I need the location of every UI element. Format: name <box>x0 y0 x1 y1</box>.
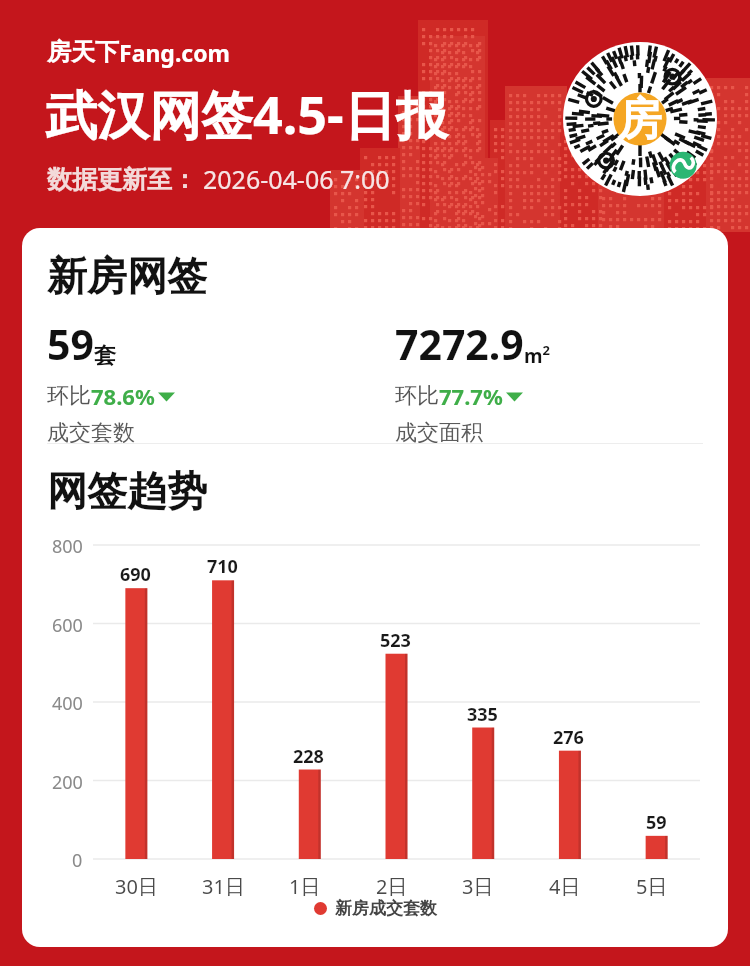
staticText: 环比 <box>47 382 91 410</box>
staticText: 0 <box>72 848 83 873</box>
staticText: 59 <box>47 316 94 372</box>
staticText: 228 <box>293 744 324 769</box>
staticText: 800 <box>52 534 83 559</box>
staticText: 5日 <box>636 873 668 900</box>
staticText: 4日 <box>549 873 581 900</box>
staticText: 78.6% <box>91 381 155 411</box>
staticText: 7272.9 <box>395 316 524 372</box>
staticText: 环比 <box>395 382 439 410</box>
staticText: 套 <box>94 342 116 370</box>
staticText: 276 <box>553 725 584 750</box>
staticText: Fang.com <box>119 37 231 68</box>
staticText: 30日 <box>115 873 158 900</box>
staticText: 31日 <box>202 873 245 900</box>
staticText: 77.7% <box>439 381 503 411</box>
staticText: 600 <box>52 613 83 638</box>
staticText: 2026-04-06 7:00 <box>203 162 390 196</box>
staticText: 1日 <box>289 873 321 900</box>
staticText: m2 <box>524 341 550 368</box>
staticText: 59 <box>646 810 667 835</box>
staticText: 房 <box>618 92 662 147</box>
staticText: 523 <box>380 628 411 653</box>
staticText: 710 <box>207 554 238 579</box>
staticText: 成交套数 <box>47 419 135 447</box>
button[interactable]: 小程序二维码 <box>563 42 717 196</box>
staticText: 房天下 <box>47 37 119 67</box>
staticText: 新房网签 <box>47 251 207 301</box>
staticText: 数据更新至： <box>47 164 197 195</box>
staticText: 200 <box>52 770 83 795</box>
staticText: 400 <box>52 691 83 716</box>
staticText: 成交面积 <box>395 419 483 447</box>
staticText: 武汉网签4.5-日报 <box>45 78 448 149</box>
staticText: 335 <box>467 702 498 727</box>
staticText: 690 <box>120 562 151 587</box>
staticText: 2日 <box>376 873 408 900</box>
staticText: 新房成交套数 <box>335 898 437 919</box>
staticText: 网签趋势 <box>47 466 207 516</box>
staticText: 3日 <box>462 873 494 900</box>
